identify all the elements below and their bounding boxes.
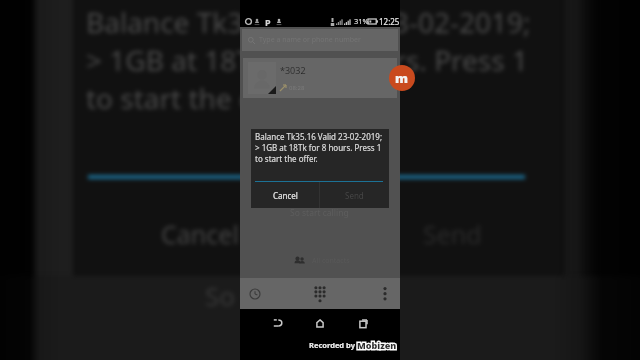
staticText: Cancel: [273, 190, 298, 201]
staticText: > 1GB at 18Tk for 8 hours. Press 1: [255, 142, 382, 153]
staticText: So start calling: [290, 207, 349, 219]
button[interactable]: Dialpad: [309, 282, 331, 304]
staticText: 12:25: [379, 16, 400, 27]
button[interactable]: Call history: [242, 278, 268, 309]
button[interactable]: Recent apps: [352, 313, 375, 333]
staticText: Type a name or phone number: [259, 35, 361, 45]
button[interactable]: All contacts: [294, 255, 350, 266]
staticText: P: [265, 16, 271, 27]
button[interactable]: *3032: [243, 58, 397, 98]
button[interactable]: Home: [308, 313, 331, 333]
staticText: Mobizen: [357, 339, 397, 351]
staticText: *3032: [280, 64, 306, 76]
staticText: Balance Tk35.16 Valid 23-02-2019;: [86, 3, 531, 41]
button[interactable]: Mobizen recorder: [389, 65, 415, 91]
staticText: Mobizen: [357, 339, 397, 351]
staticText: Recorded by: [309, 340, 355, 350]
staticText: > 1GB at 18Tk for 8 hours. Press 1: [86, 41, 528, 79]
staticText: So start calling: [205, 278, 385, 313]
button[interactable]: Send: [320, 182, 389, 208]
staticText: 31%: [354, 16, 369, 26]
staticText: Send: [345, 190, 364, 201]
staticText: Cancel: [161, 217, 239, 251]
staticText: Send: [423, 217, 482, 251]
button[interactable]: More options: [376, 278, 394, 309]
staticText: 08:28: [289, 84, 305, 92]
staticText: to start the offer.: [86, 79, 306, 117]
staticText: Balance Tk35.16 Valid 23-02-2019;: [255, 131, 383, 142]
staticText: m: [395, 69, 409, 87]
button[interactable]: Back: [265, 313, 289, 333]
button[interactable]: Cancel: [251, 182, 319, 208]
staticText: to start the offer.: [255, 153, 318, 164]
